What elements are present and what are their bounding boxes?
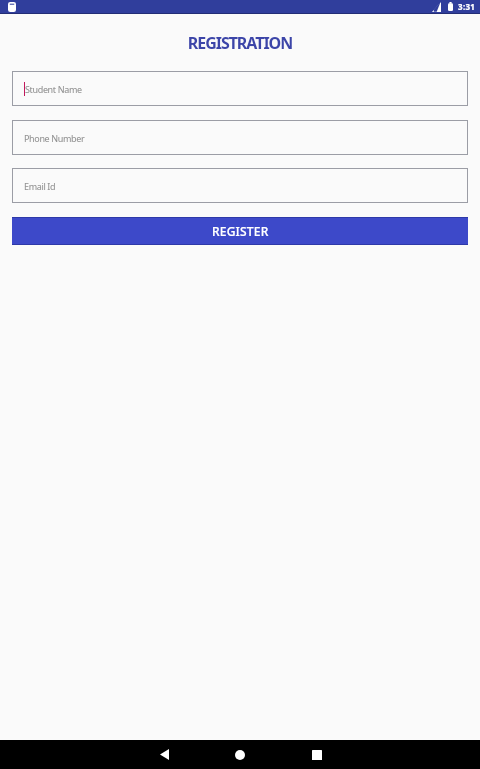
button[interactable]: Email Id [12, 168, 468, 203]
staticText: REGISTER [212, 223, 269, 239]
button[interactable]: Back [140, 740, 188, 769]
button[interactable]: Recent apps [293, 740, 341, 769]
staticText: Student Name [25, 83, 82, 95]
staticText: Phone Number [24, 132, 85, 144]
button[interactable]: Home [216, 740, 264, 769]
staticText: REGISTRATION [0, 32, 480, 54]
button[interactable]: Phone Number [12, 120, 468, 155]
staticText: Email Id [24, 180, 56, 192]
staticText: 3:31 [458, 1, 476, 12]
button[interactable]: REGISTER [12, 217, 468, 245]
button[interactable]: Student Name [12, 71, 468, 106]
